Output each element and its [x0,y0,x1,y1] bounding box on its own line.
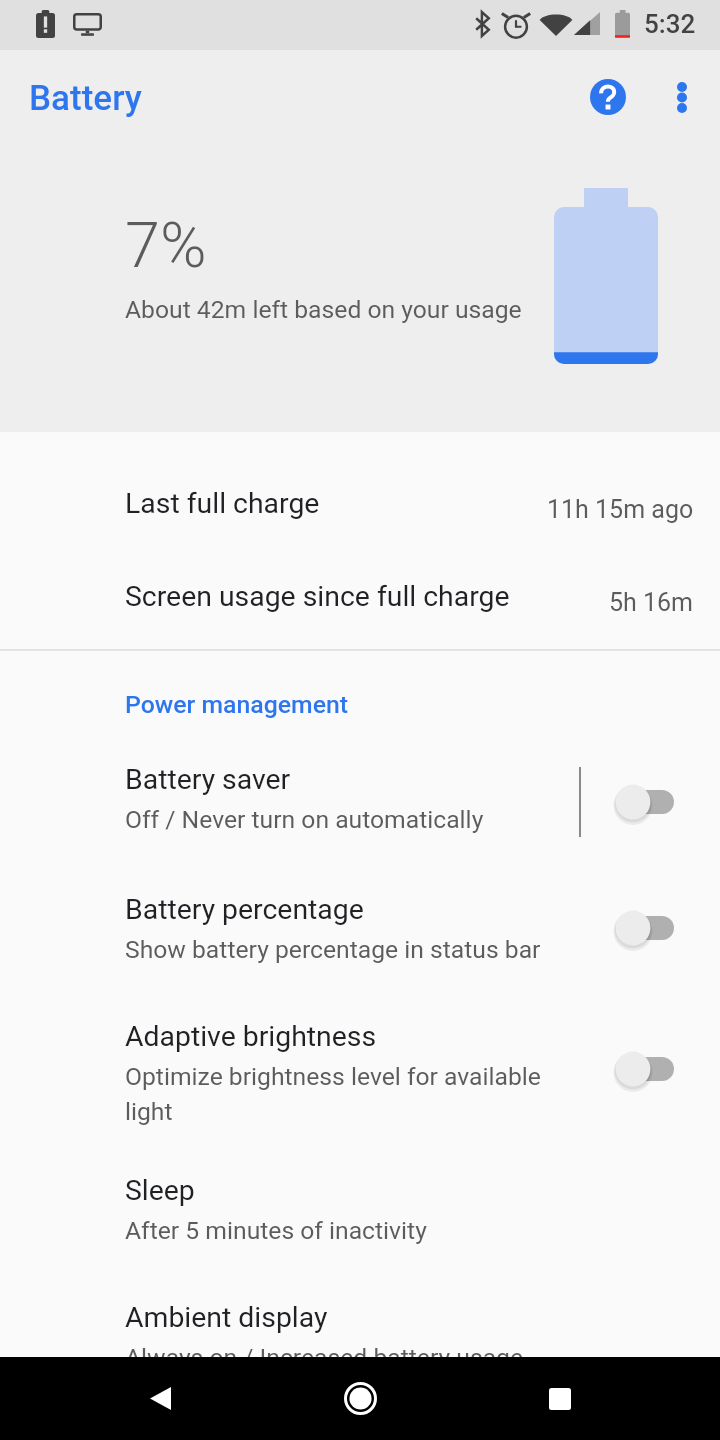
button[interactable] [0,998,720,1110]
button[interactable]: Adaptive brightness switch [597,1029,693,1109]
staticText: Power management [125,690,348,719]
staticText: 11h 15m ago [547,495,694,524]
button[interactable]: Battery percentage switch [597,888,693,968]
staticText: Optimize brightness level for available … [125,1062,555,1126]
button[interactable]: Screen usage since full charge [0,556,720,649]
button[interactable]: More options [646,61,718,133]
staticText: Always on / Increased battery usage [125,1343,524,1372]
staticText: Ambient display [125,1301,328,1334]
staticText: Adaptive brightness [125,1020,377,1053]
staticText: Sleep [125,1174,195,1207]
staticText: After 5 minutes of inactivity [125,1216,427,1245]
button[interactable]: Back [112,1357,208,1440]
staticText: Battery saver [125,763,291,796]
button[interactable] [0,1152,720,1264]
staticText: Screen usage since full charge [125,580,510,613]
staticText: Battery [29,78,142,119]
button[interactable] [0,1279,720,1391]
staticText: 7% [125,209,207,283]
button[interactable]: Battery saver switch [597,762,693,842]
staticText: 5h 16m [609,588,694,617]
staticText: Show battery percentage in status bar [125,935,541,964]
staticText: Battery percentage [125,893,364,926]
staticText: About 42m left based on your usage [125,295,522,324]
staticText: Last full charge [125,487,320,520]
button[interactable]: Recents [512,1357,608,1440]
staticText: Off / Never turn on automatically [125,805,484,834]
button[interactable]: Power management [0,678,720,742]
button[interactable]: Last full charge [0,463,720,556]
button[interactable] [0,741,579,853]
button[interactable]: Home [312,1357,408,1440]
button[interactable] [0,871,720,983]
button[interactable]: Help [572,61,644,133]
staticText: 5:32 [644,9,696,39]
